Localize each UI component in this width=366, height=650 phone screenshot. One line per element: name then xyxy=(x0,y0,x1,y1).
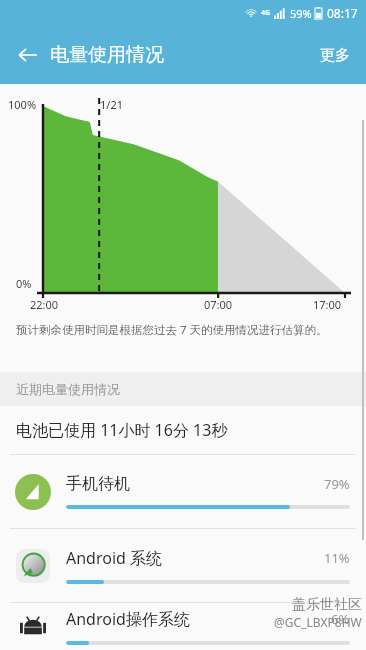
staticText: 电量使用情况 xyxy=(50,43,164,67)
staticText: @GC_LBXP8HW xyxy=(274,614,362,630)
button[interactable]: 电池已使用 11小时 16分 13秒 xyxy=(0,406,366,454)
staticText: 6% xyxy=(331,610,350,628)
staticText: 手机待机 xyxy=(66,474,130,494)
staticText: Android 系统 xyxy=(66,547,163,569)
staticText: 更多 xyxy=(320,46,350,65)
staticText: 17:00 xyxy=(313,297,342,312)
button[interactable]: Android操作系统 xyxy=(0,603,366,650)
staticText: 近期电量使用情况 xyxy=(16,381,120,397)
button[interactable]: 手机待机 xyxy=(0,455,366,528)
staticText: 盖乐世社区 xyxy=(292,596,362,614)
staticText: 07:00 xyxy=(204,297,233,312)
button[interactable]: 更多 xyxy=(308,36,362,75)
staticText: 22:00 xyxy=(30,297,59,312)
staticText: 79% xyxy=(324,475,350,493)
staticText: 59% xyxy=(290,6,312,21)
staticText: 0% xyxy=(16,276,32,291)
staticText: 4G xyxy=(261,8,271,18)
staticText: 1/21 xyxy=(100,97,123,112)
staticText: 电池已使用 11小时 16分 13秒 xyxy=(16,419,228,441)
staticText: Android操作系统 xyxy=(66,608,190,630)
button[interactable]: Android 系统 xyxy=(0,529,366,602)
staticText: 100% xyxy=(8,97,37,112)
staticText: 11% xyxy=(324,549,350,567)
staticText: 08:17 xyxy=(327,5,358,21)
button[interactable]: 返回 xyxy=(8,35,48,75)
staticText: 预计剩余使用时间是根据您过去 7 天的使用情况进行估算的。 xyxy=(16,322,328,338)
